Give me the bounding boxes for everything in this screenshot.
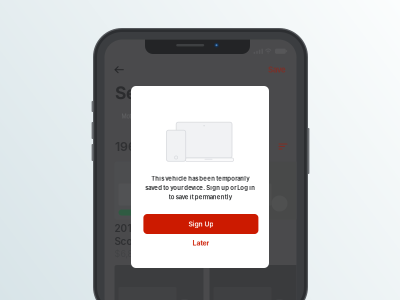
button[interactable]: Sign Up	[143, 214, 258, 234]
staticText: 196 results	[115, 139, 180, 154]
button[interactable]: 2019	[209, 265, 298, 300]
staticText: Motorcycles · Nationwide	[121, 113, 186, 120]
staticText: Sign Up	[188, 220, 213, 228]
staticText: $6,800	[114, 248, 144, 259]
staticText: This vehicle has been temporarily saved …	[145, 175, 255, 201]
button[interactable]: Save	[263, 61, 291, 78]
button[interactable]: Later	[143, 235, 258, 251]
button[interactable]: Back	[109, 61, 128, 77]
staticText: 2018	[209, 222, 232, 234]
staticText: Scout	[114, 235, 141, 247]
staticText: Save	[268, 65, 286, 74]
staticText: 2016	[114, 222, 137, 234]
button[interactable]: Sort	[273, 138, 292, 154]
button[interactable]: 2018	[209, 161, 298, 259]
staticText: Later	[192, 239, 209, 247]
button[interactable]: 2016	[114, 161, 203, 259]
button[interactable]: 2014	[114, 265, 203, 300]
staticText: Search	[115, 82, 174, 103]
